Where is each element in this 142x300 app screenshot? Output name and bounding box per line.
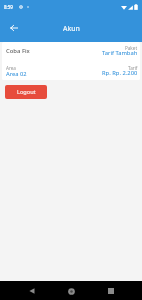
staticText: Tarif Tambah [102,49,138,57]
button[interactable]: Back [24,283,40,299]
staticText: Area [6,65,16,71]
button[interactable]: Recents [103,283,119,299]
button[interactable]: Back [6,20,21,35]
staticText: Paket [125,45,138,51]
staticText: Coba Fix [6,47,30,55]
staticText: Rp. Rp. 2.200 [102,69,138,77]
staticText: Area 02 [6,70,27,78]
staticText: Tarif [128,65,138,71]
staticText: 8:59 [4,4,13,10]
staticText: Logout [17,88,36,96]
button[interactable]: Home [63,283,79,299]
button[interactable]: Logout [5,85,47,99]
staticText: Akun [63,24,80,34]
